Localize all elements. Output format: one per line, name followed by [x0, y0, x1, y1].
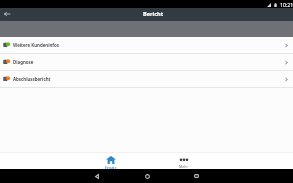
button[interactable]: Zurück	[0, 8, 14, 21]
button[interactable]: Weitere Kundeninfos	[0, 37, 293, 53]
staticText: Einsatz	[74, 165, 147, 169]
staticText: Bericht	[143, 10, 164, 18]
button[interactable]: Mehr	[147, 153, 220, 169]
button[interactable]: Einsatz	[74, 153, 147, 169]
button[interactable]: Diagnose	[0, 54, 293, 70]
staticText: Weitere Kundeninfos	[13, 42, 59, 48]
button[interactable]: Recent apps	[190, 170, 202, 182]
button[interactable]: Back	[91, 170, 103, 182]
button[interactable]: Abschlussbericht	[0, 71, 293, 87]
staticText: Diagnose	[13, 59, 34, 65]
staticText: Mehr	[147, 164, 220, 169]
button[interactable]: Home	[141, 170, 153, 182]
staticText: 10:21	[280, 1, 293, 8]
staticText: Abschlussbericht	[13, 76, 51, 82]
